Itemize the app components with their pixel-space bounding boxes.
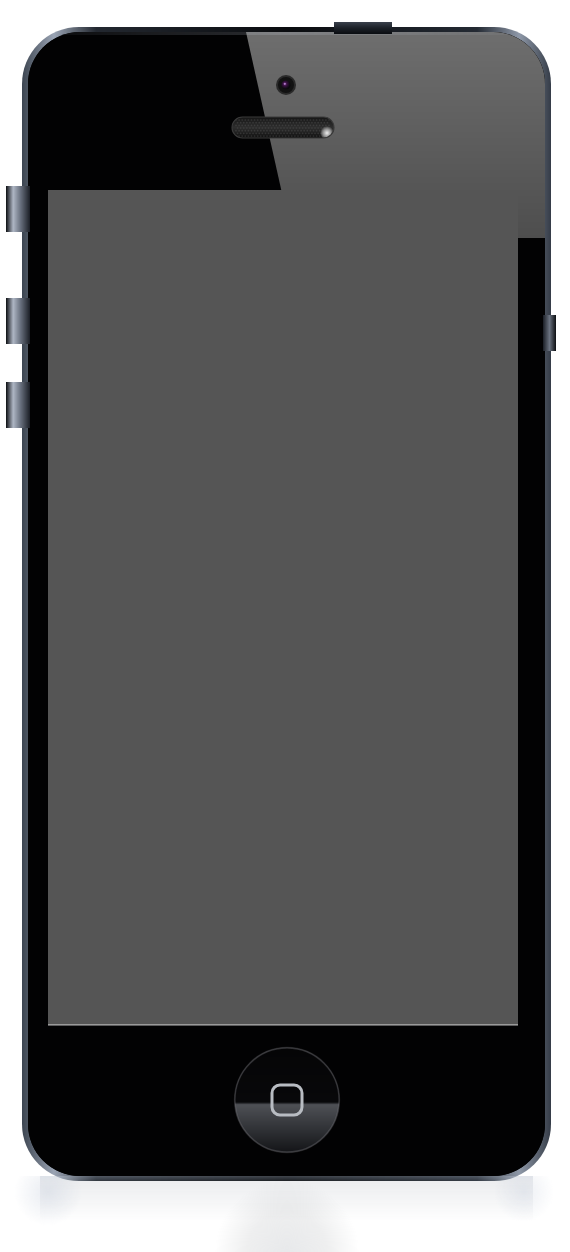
button[interactable]: Phone device mockup xyxy=(0,0,570,1252)
